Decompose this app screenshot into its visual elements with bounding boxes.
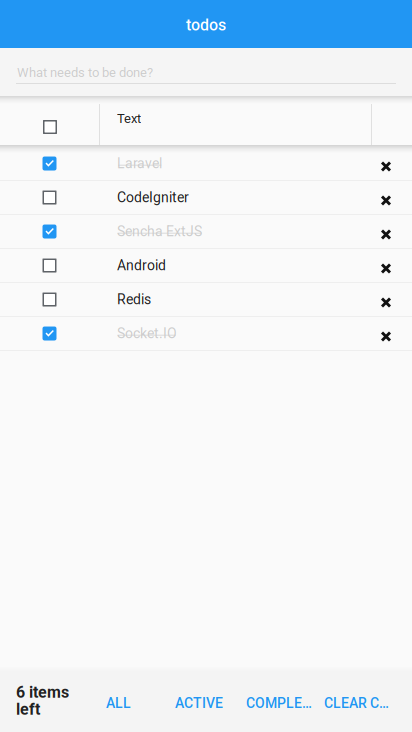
- button[interactable]: Delete Socket.IO: [366, 317, 406, 350]
- button[interactable]: Complete CodeIgniter: [0, 181, 99, 214]
- staticText: Redis: [117, 291, 151, 308]
- staticText: ACTIVE: [175, 695, 223, 711]
- staticText: What needs to be done?: [17, 65, 153, 80]
- button[interactable]: ACTIVE: [175, 687, 223, 719]
- button[interactable]: Delete Android: [366, 249, 406, 282]
- staticText: COMPLE…: [246, 695, 312, 711]
- button[interactable]: ALL: [106, 687, 131, 719]
- button[interactable]: Complete Android: [0, 249, 99, 282]
- staticText: 6 items: [16, 683, 69, 702]
- button[interactable]: CLEAR C…: [324, 687, 389, 719]
- button[interactable]: Delete Laravel: [366, 147, 406, 180]
- button[interactable]: Delete CodeIgniter: [366, 181, 406, 214]
- button[interactable]: Mark Laravel active: [0, 147, 99, 180]
- staticText: Laravel: [117, 155, 162, 172]
- button[interactable]: Complete Redis: [0, 283, 99, 316]
- staticText: left: [16, 700, 40, 719]
- button[interactable]: COMPLE…: [246, 687, 312, 719]
- staticText: todos: [186, 16, 226, 34]
- button[interactable]: Delete Sencha ExtJS: [366, 215, 406, 248]
- staticText: CLEAR C…: [324, 695, 389, 711]
- staticText: ALL: [106, 695, 131, 711]
- button[interactable]: Delete Redis: [366, 283, 406, 316]
- staticText: Sencha ExtJS: [117, 223, 202, 240]
- button[interactable]: New todo text field: [0, 48, 412, 97]
- staticText: Text: [117, 111, 141, 126]
- staticText: CodeIgniter: [117, 189, 189, 206]
- staticText: Socket.IO: [117, 325, 177, 342]
- button[interactable]: Toggle all: [0, 97, 99, 145]
- button[interactable]: Mark Sencha ExtJS active: [0, 215, 99, 248]
- staticText: Android: [117, 257, 166, 274]
- button[interactable]: Mark Socket.IO active: [0, 317, 99, 350]
